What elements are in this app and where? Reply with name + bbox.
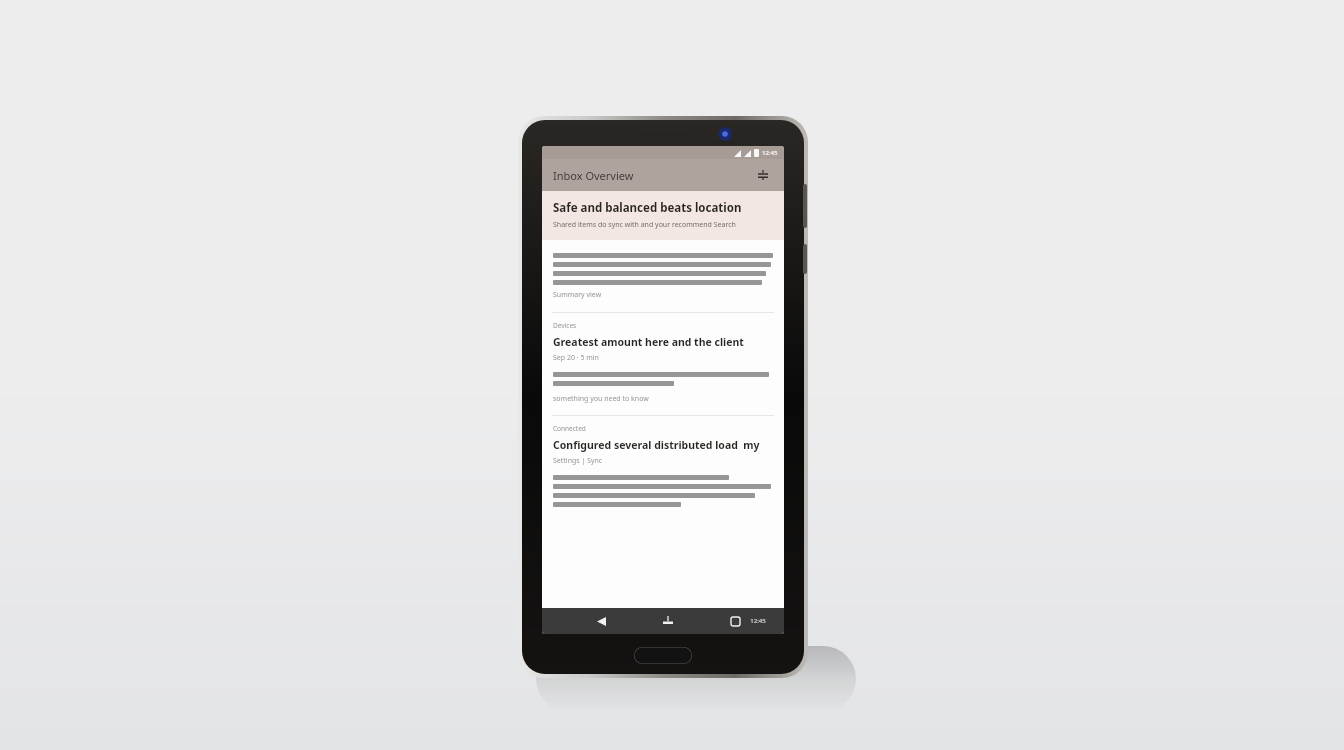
button[interactable]: Filter options [753, 165, 773, 185]
button[interactable]: Devices [542, 313, 784, 415]
staticText: something you need to know [553, 394, 649, 404]
staticText: 12:45 [750, 617, 766, 625]
button[interactable]: Home [657, 610, 679, 632]
staticText: Safe and balanced beats location [553, 200, 742, 216]
button[interactable]: Recent apps [724, 610, 746, 632]
button[interactable]: Connected [542, 416, 784, 519]
staticText: Inbox Overview [553, 168, 634, 183]
staticText: Summary view [553, 290, 602, 300]
staticText: 12:45 [762, 149, 778, 157]
button[interactable]: Summary view [542, 247, 784, 306]
staticText: Connected [553, 424, 586, 433]
staticText: Greatest amount here and the client layo… [553, 335, 773, 349]
button[interactable]: Back [590, 610, 612, 632]
staticText: Shared items do sync with and your recom… [553, 220, 736, 230]
staticText: Configured several distributed load my l… [553, 438, 773, 452]
staticText: Devices [553, 321, 577, 330]
staticText: Sep 20 · 5 min [553, 353, 599, 363]
staticText: Settings | Sync [553, 456, 603, 466]
